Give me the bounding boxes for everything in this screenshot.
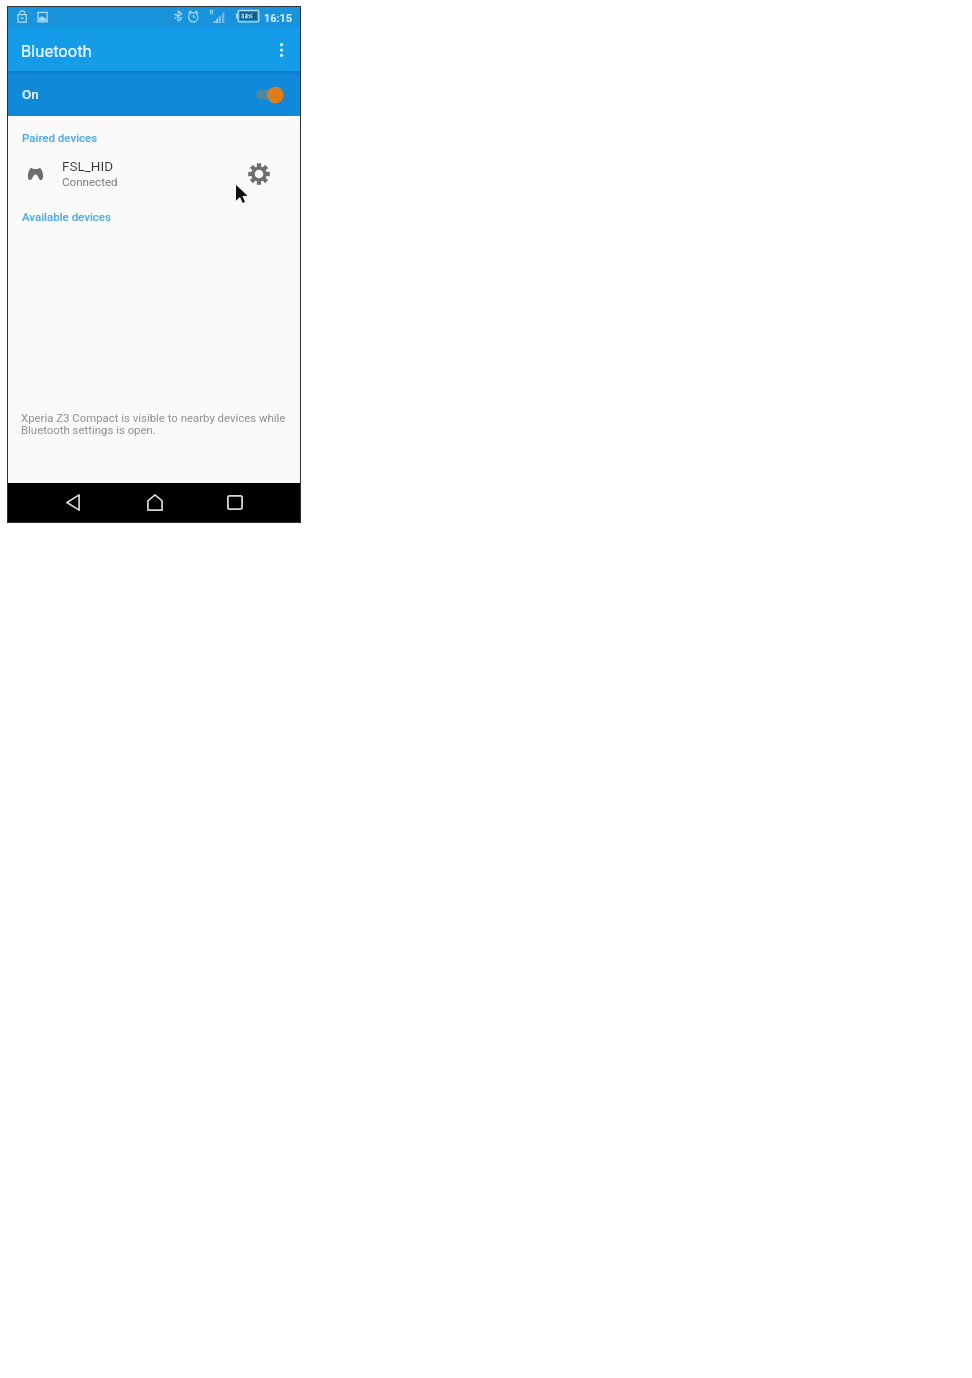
button[interactable]: Home bbox=[135, 483, 175, 522]
button[interactable]: More options bbox=[266, 28, 296, 71]
button[interactable]: Device settings bbox=[243, 158, 275, 190]
staticText: Bluetooth bbox=[21, 42, 92, 61]
button[interactable]: FSL_HID bbox=[8, 157, 300, 199]
staticText: Paired devices bbox=[22, 131, 98, 144]
button[interactable]: Recent apps bbox=[215, 483, 255, 522]
button[interactable]: On bbox=[8, 71, 300, 116]
staticText: 16:15 bbox=[264, 12, 292, 25]
staticText: Available devices bbox=[22, 210, 111, 223]
button[interactable]: Back bbox=[53, 483, 93, 522]
staticText: Xperia Z3 Compact is visible to nearby d… bbox=[21, 411, 297, 437]
staticText: On bbox=[22, 86, 39, 102]
staticText: FSL_HID bbox=[62, 158, 114, 174]
staticText: Connected bbox=[62, 175, 118, 189]
